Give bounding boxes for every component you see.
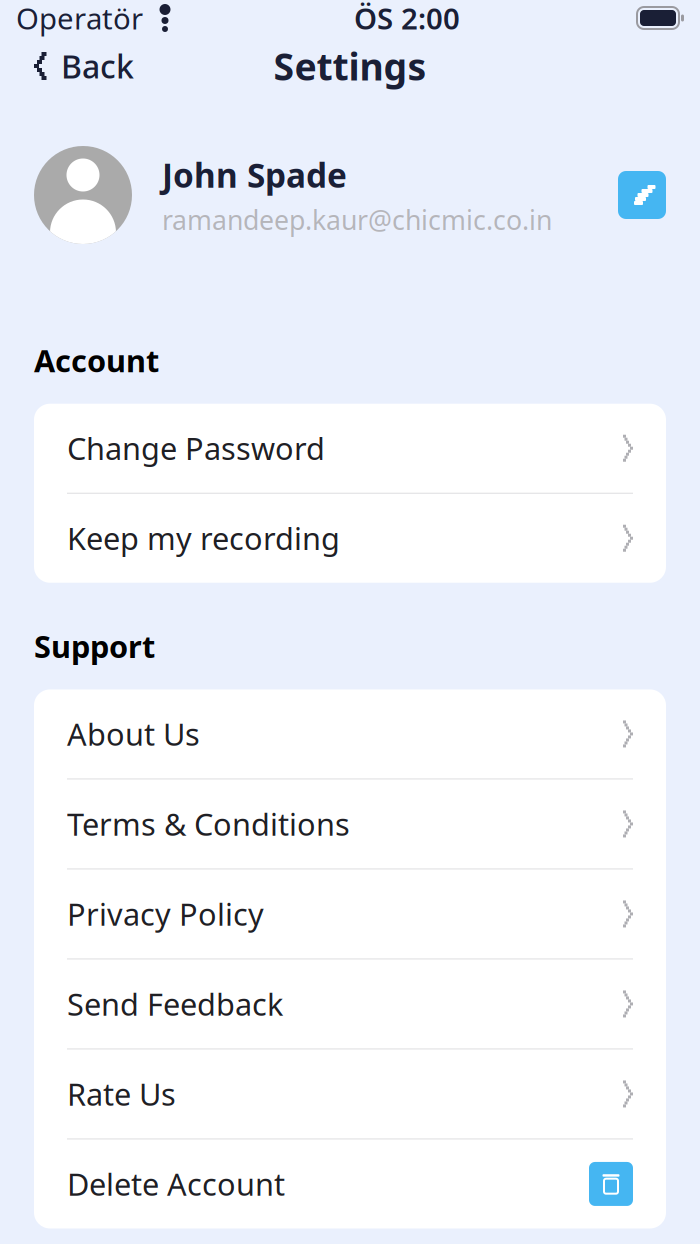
staticText: ramandeep.kaur@chicmic.co.in — [162, 202, 552, 237]
staticText: Privacy Policy — [67, 894, 264, 934]
staticText: About Us — [67, 714, 200, 754]
button[interactable]: Keep my recording — [34, 494, 666, 583]
button[interactable]: Edit profile — [618, 171, 666, 219]
button[interactable]: Terms & Conditions — [34, 779, 666, 868]
staticText: Change Password — [67, 428, 325, 469]
button[interactable]: Send Feedback — [34, 959, 666, 1048]
staticText: Terms & Conditions — [67, 804, 350, 844]
staticText: Keep my recording — [67, 518, 340, 559]
button[interactable]: Back — [18, 37, 150, 95]
staticText: Send Feedback — [67, 984, 283, 1024]
button[interactable]: Change Password — [34, 404, 666, 493]
staticText: Settings — [273, 41, 426, 91]
button[interactable]: Rate Us — [34, 1049, 666, 1138]
staticText: ÖS 2:00 — [354, 0, 460, 37]
staticText: Operatör — [16, 0, 143, 37]
staticText: Rate Us — [67, 1074, 176, 1114]
button[interactable]: Privacy Policy — [34, 869, 666, 958]
staticText: John Spade — [162, 153, 347, 197]
button[interactable]: Delete Account — [34, 1139, 666, 1228]
staticText: Account — [34, 340, 159, 381]
button[interactable]: About Us — [34, 689, 666, 778]
staticText: Back — [61, 45, 134, 87]
staticText: Delete Account — [67, 1164, 285, 1204]
staticText: Support — [34, 626, 155, 666]
